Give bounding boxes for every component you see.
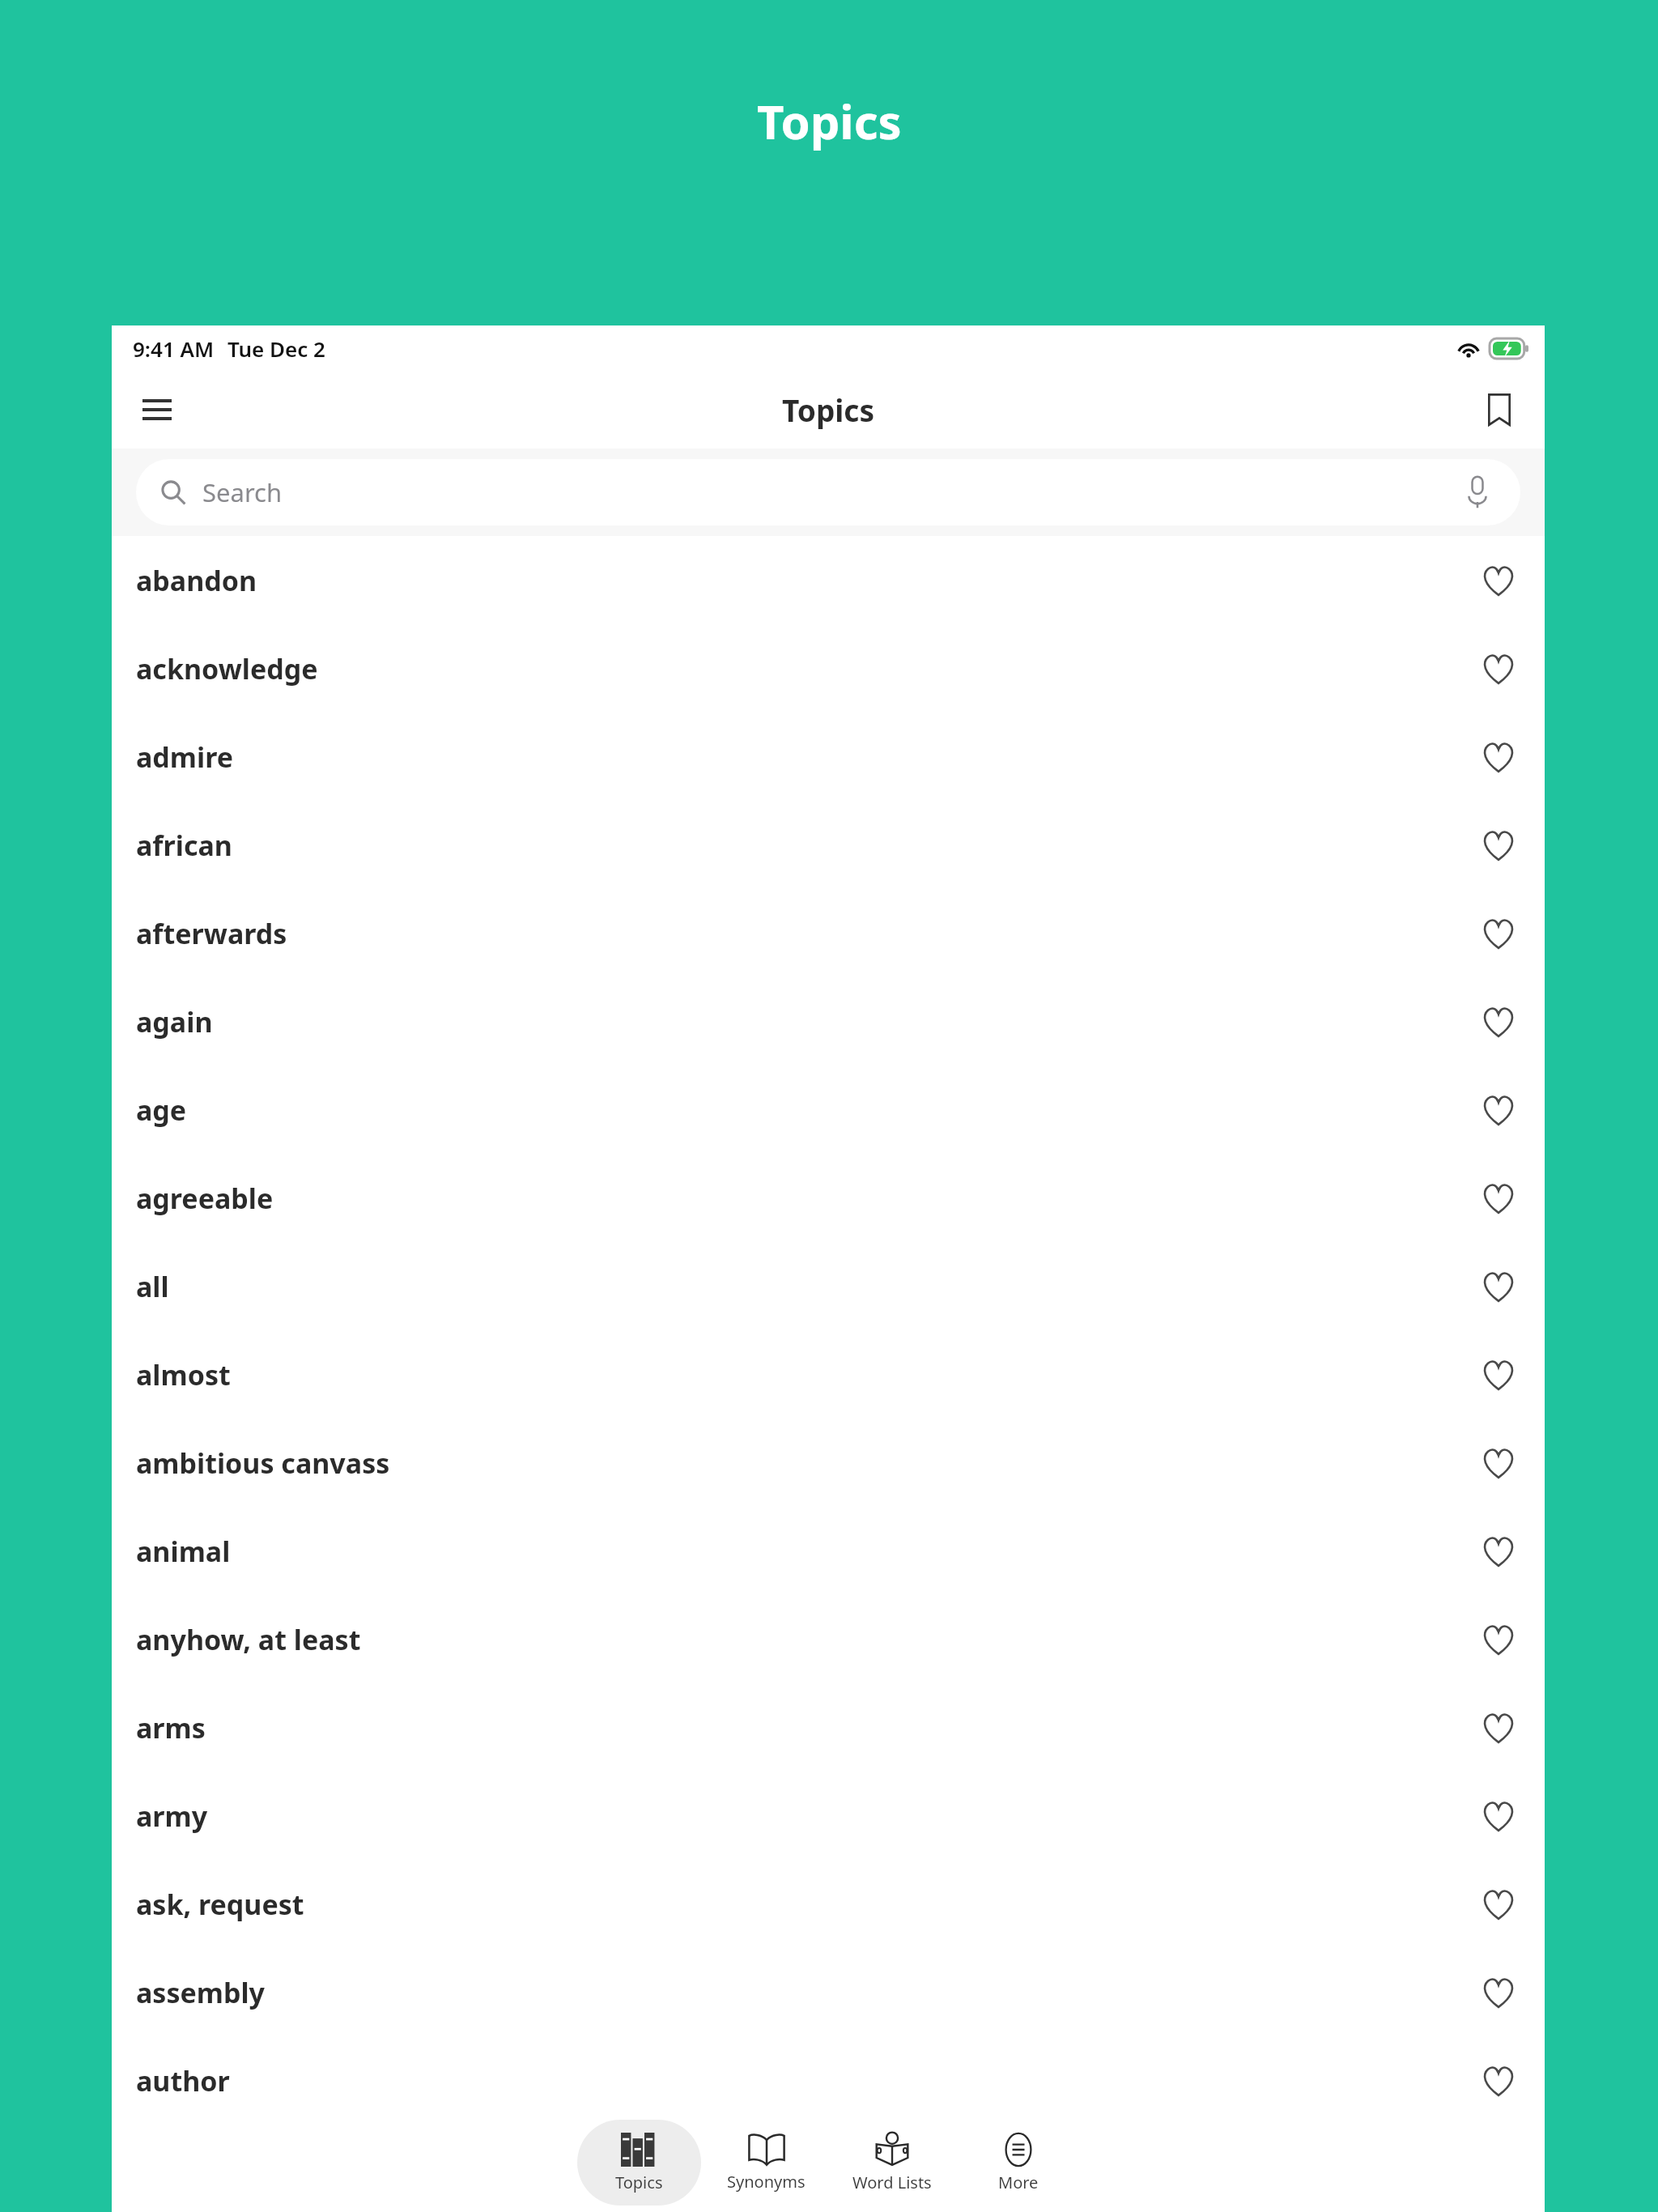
button[interactable]: again — [112, 977, 1545, 1066]
staticText: Topics — [615, 2172, 663, 2193]
staticText: assembly — [136, 1974, 265, 2011]
button[interactable]: ask, request — [112, 1860, 1545, 1948]
staticText: anyhow, at least — [136, 1621, 361, 1658]
button[interactable]: Word Lists — [831, 2120, 954, 2206]
staticText: author — [136, 2062, 230, 2099]
button[interactable]: Synonyms — [704, 2120, 827, 2206]
button[interactable]: Favorite agreeable — [1473, 1173, 1524, 1223]
button[interactable]: More — [957, 2120, 1080, 2206]
staticText: army — [136, 1797, 208, 1835]
staticText: ambitious canvass — [136, 1444, 390, 1482]
button[interactable]: african — [112, 801, 1545, 889]
button[interactable]: all — [112, 1242, 1545, 1330]
button[interactable]: anyhow, at least — [112, 1595, 1545, 1683]
staticText: agreeable — [136, 1180, 274, 1217]
button[interactable]: almost — [112, 1330, 1545, 1419]
button[interactable]: agreeable — [112, 1154, 1545, 1242]
staticText: ask, request — [136, 1886, 304, 1923]
staticText: 9:41 AM — [133, 334, 215, 363]
button[interactable]: acknowledge — [112, 624, 1545, 713]
button[interactable]: Favorite ask, request — [1473, 1879, 1524, 1929]
staticText: african — [136, 827, 232, 864]
button[interactable]: Favorite animal — [1473, 1526, 1524, 1576]
button[interactable]: arms — [112, 1683, 1545, 1772]
button[interactable]: Search — [136, 459, 1520, 525]
button[interactable]: age — [112, 1066, 1545, 1154]
button[interactable]: abandon — [112, 536, 1545, 624]
button[interactable]: Favorite army — [1473, 1791, 1524, 1841]
button[interactable]: afterwards — [112, 889, 1545, 977]
staticText: animal — [136, 1533, 231, 1570]
button[interactable]: Favorite ambitious canvass — [1473, 1438, 1524, 1488]
staticText: abandon — [136, 562, 257, 599]
button[interactable]: Favorite anyhow, at least — [1473, 1614, 1524, 1665]
staticText: arms — [136, 1709, 206, 1746]
staticText: Tue Dec 2 — [227, 334, 325, 363]
button[interactable]: Favorite age — [1473, 1085, 1524, 1135]
button[interactable]: Bookmarks — [1470, 381, 1528, 439]
button[interactable]: Favorite again — [1473, 997, 1524, 1047]
staticText: More — [998, 2172, 1039, 2193]
button[interactable]: Favorite african — [1473, 820, 1524, 870]
staticText: Word Lists — [852, 2172, 932, 2193]
button[interactable]: animal — [112, 1507, 1545, 1595]
button[interactable]: Favorite arms — [1473, 1703, 1524, 1753]
button[interactable]: Voice search — [1459, 474, 1496, 511]
button[interactable]: Favorite almost — [1473, 1350, 1524, 1400]
staticText: afterwards — [136, 915, 287, 952]
button[interactable]: Favorite afterwards — [1473, 908, 1524, 959]
button[interactable]: Favorite acknowledge — [1473, 644, 1524, 694]
button[interactable]: Favorite admire — [1473, 732, 1524, 782]
staticText: again — [136, 1003, 213, 1040]
button[interactable]: Favorite abandon — [1473, 555, 1524, 606]
button[interactable]: admire — [112, 713, 1545, 801]
button[interactable]: army — [112, 1772, 1545, 1860]
staticText: almost — [136, 1356, 231, 1393]
button[interactable]: Menu — [128, 381, 186, 439]
staticText: Topics — [782, 389, 874, 430]
button[interactable]: Favorite all — [1473, 1261, 1524, 1312]
button[interactable]: author — [112, 2036, 1545, 2125]
staticText: all — [136, 1268, 169, 1305]
staticText: Synonyms — [727, 2171, 806, 2193]
staticText: Topics — [757, 89, 902, 153]
staticText: admire — [136, 738, 233, 776]
button[interactable]: ambitious canvass — [112, 1419, 1545, 1507]
button[interactable]: Favorite assembly — [1473, 1967, 1524, 2018]
button[interactable]: Favorite author — [1473, 2056, 1524, 2106]
staticText: Search — [202, 475, 283, 509]
staticText: age — [136, 1091, 187, 1129]
button[interactable]: Topics — [577, 2120, 701, 2206]
staticText: acknowledge — [136, 650, 318, 687]
button[interactable]: assembly — [112, 1948, 1545, 2036]
